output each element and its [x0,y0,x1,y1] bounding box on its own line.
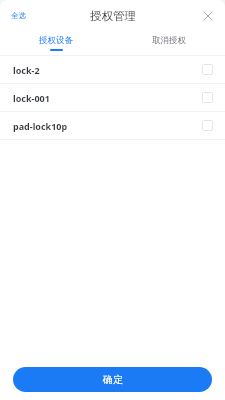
button[interactable]: 取消授权 [112,31,225,55]
staticText: 全选 [11,11,26,20]
button[interactable]: lock-2 [0,56,225,83]
staticText: 授权设备 [39,35,73,46]
staticText: pad-lock10p [13,120,68,132]
button[interactable]: 全选 [0,7,34,24]
button[interactable]: 确定 [13,367,212,392]
button[interactable]: 授权设备 [0,31,112,55]
button[interactable]: pad-lock10p [0,112,225,139]
staticText: lock-2 [13,64,40,76]
button[interactable]: Close [197,5,219,27]
staticText: lock-001 [13,92,50,104]
staticText: 确定 [103,373,123,386]
staticText: 授权管理 [90,9,136,23]
staticText: 取消授权 [152,35,186,46]
button[interactable]: lock-001 [0,84,225,111]
